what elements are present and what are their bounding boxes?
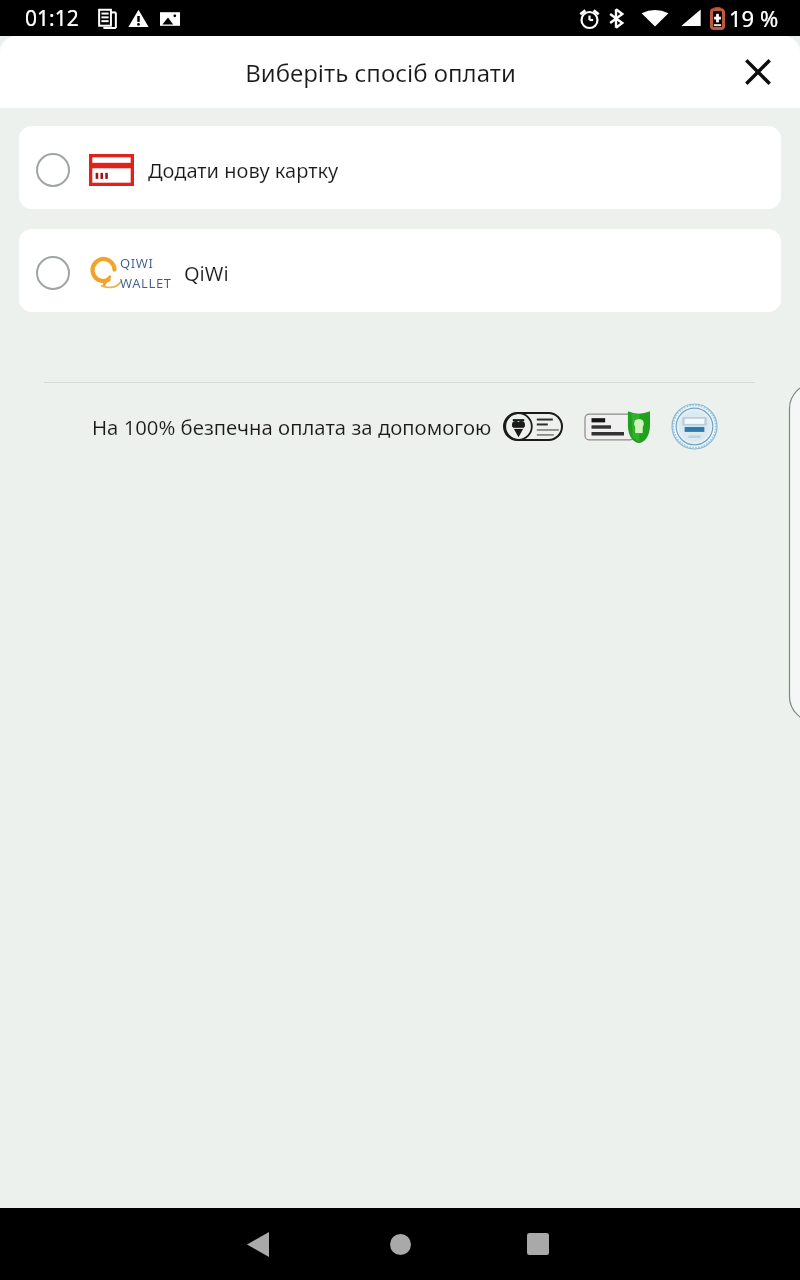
button[interactable]: Додати нову картку [19,126,781,209]
staticText: Виберіть спосіб оплати [245,56,516,89]
button[interactable]: Close [735,49,781,95]
staticText: WALLET [120,274,172,288]
button[interactable]: QIWI [19,229,781,312]
staticText: Додати нову картку [148,157,339,184]
staticText: QiWi [184,260,229,287]
button[interactable]: Back [234,1220,282,1268]
staticText: На 100% безпечна оплата за допомогою [92,413,492,441]
staticText: QIWI [120,254,154,272]
staticText: 19 % [729,3,779,33]
button[interactable]: Recents [514,1220,562,1268]
staticText: 01:12 [25,4,79,33]
button[interactable]: Home [376,1220,424,1268]
